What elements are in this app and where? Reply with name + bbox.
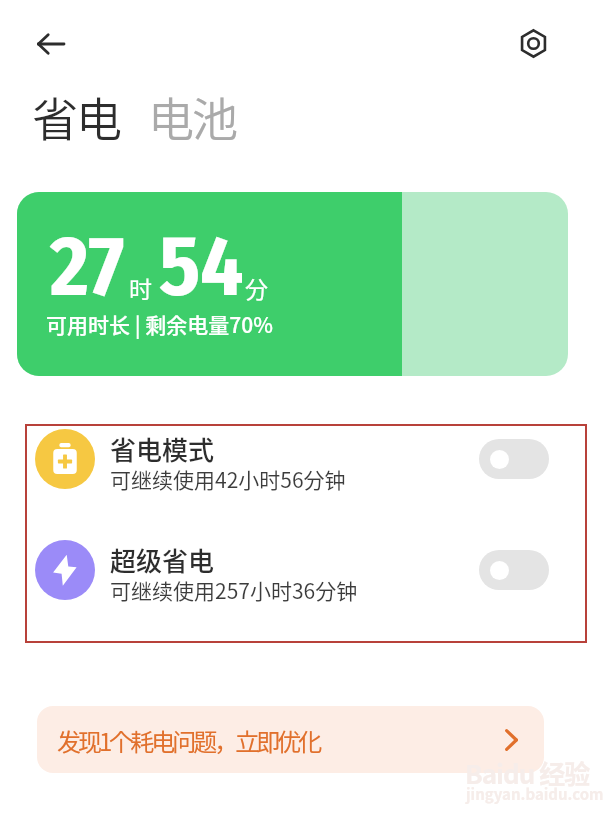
staticText: 54	[159, 216, 244, 317]
button[interactable]: Toggle 省电模式	[479, 439, 549, 479]
button[interactable]: Back	[27, 20, 75, 68]
staticText: 可继续使用42小时56分钟	[110, 464, 346, 494]
staticText: Baidu 经验	[465, 754, 590, 792]
staticText: 超级省电	[110, 541, 215, 579]
button[interactable]: 电池	[149, 83, 237, 150]
staticText: 电池	[149, 83, 237, 150]
button[interactable]: 省电	[33, 83, 121, 150]
staticText: 时	[129, 271, 152, 304]
button[interactable]: 省电模式	[25, 405, 587, 513]
button[interactable]: Settings	[509, 19, 557, 67]
button[interactable]: 超级省电	[25, 516, 587, 624]
staticText: 27	[50, 216, 125, 317]
staticText: 省电模式	[110, 430, 215, 468]
button[interactable]: 27	[17, 192, 568, 376]
staticText: 可继续使用257小时36分钟	[110, 575, 358, 605]
staticText: 可用时长 | 剩余电量70%	[46, 309, 274, 339]
staticText: 分	[245, 271, 268, 304]
staticText: 省电	[33, 83, 121, 150]
button[interactable]: 发现1个耗电问题，立即优化	[37, 706, 544, 773]
button[interactable]: Toggle 超级省电	[479, 550, 549, 590]
staticText: jingyan.baidu.com	[466, 783, 604, 805]
staticText: 发现1个耗电问题，立即优化	[57, 723, 320, 758]
